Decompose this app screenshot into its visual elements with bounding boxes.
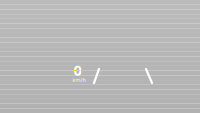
staticText: km/h	[72, 76, 85, 84]
staticText: 0	[73, 60, 81, 80]
